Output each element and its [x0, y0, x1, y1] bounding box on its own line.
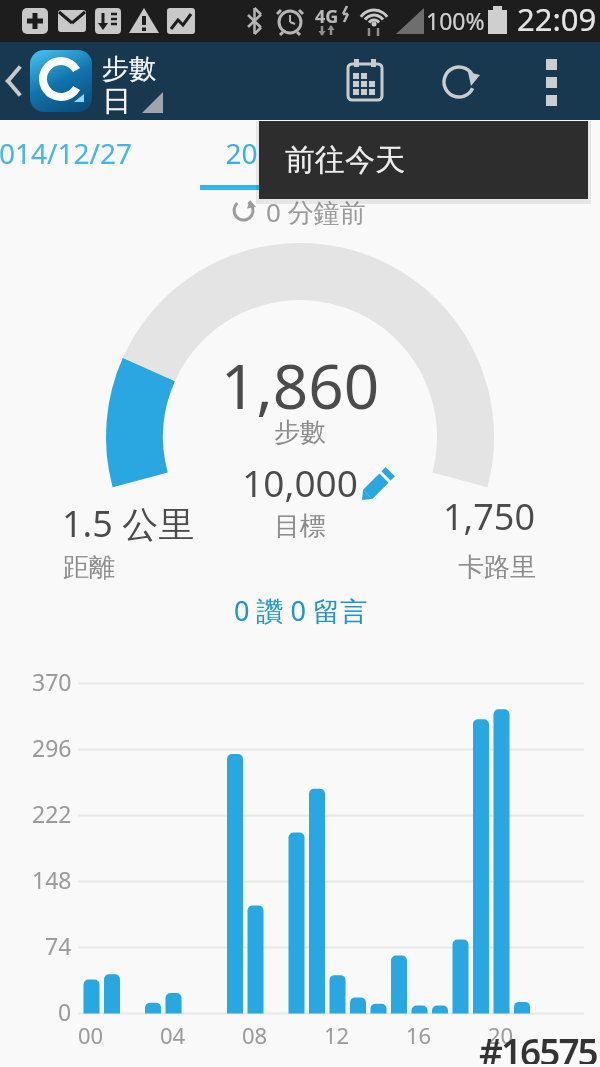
staticText: 04	[160, 1020, 186, 1050]
staticText: 4G	[315, 4, 339, 29]
staticText: 0	[58, 996, 72, 1024]
staticText: 12	[324, 1020, 350, 1050]
staticText: 0 讚 0 留言	[234, 592, 367, 628]
staticText: 前往今天	[285, 141, 405, 179]
staticText: 100%	[426, 5, 485, 36]
button[interactable]	[240, 462, 396, 506]
staticText: 1,860	[0, 343, 600, 427]
staticText: 目標	[0, 510, 600, 543]
staticText: 16	[406, 1020, 432, 1050]
button[interactable]	[528, 42, 574, 120]
staticText: 1.5 公里	[62, 499, 195, 548]
staticText: 2014/12/28	[0, 134, 600, 172]
button[interactable]	[430, 42, 488, 120]
staticText: #16575	[479, 1026, 597, 1064]
staticText: 370	[32, 666, 72, 694]
staticText: 20	[488, 1020, 514, 1050]
staticText: 0 分鐘前	[266, 194, 366, 230]
staticText: 74	[45, 930, 72, 958]
staticText: 卡路里	[458, 551, 536, 584]
button[interactable]	[336, 42, 394, 120]
staticText: 距離	[63, 551, 115, 584]
staticText: 222	[32, 798, 72, 826]
staticText: 22:09	[517, 0, 597, 40]
staticText: 日	[102, 83, 131, 120]
button[interactable]: 0 讚 0 留言	[200, 592, 400, 628]
staticText: 步數	[0, 416, 600, 449]
staticText: 2014/12/27	[0, 134, 132, 172]
button[interactable]: 前往今天	[259, 121, 588, 199]
button[interactable]	[0, 42, 180, 120]
staticText: 148	[32, 864, 72, 892]
staticText: 步數	[102, 52, 156, 86]
staticText: 10,000	[0, 457, 600, 507]
staticText: 08	[242, 1020, 268, 1050]
staticText: 1,750	[443, 492, 536, 541]
staticText: 296	[32, 732, 72, 760]
staticText: 00	[78, 1020, 104, 1050]
